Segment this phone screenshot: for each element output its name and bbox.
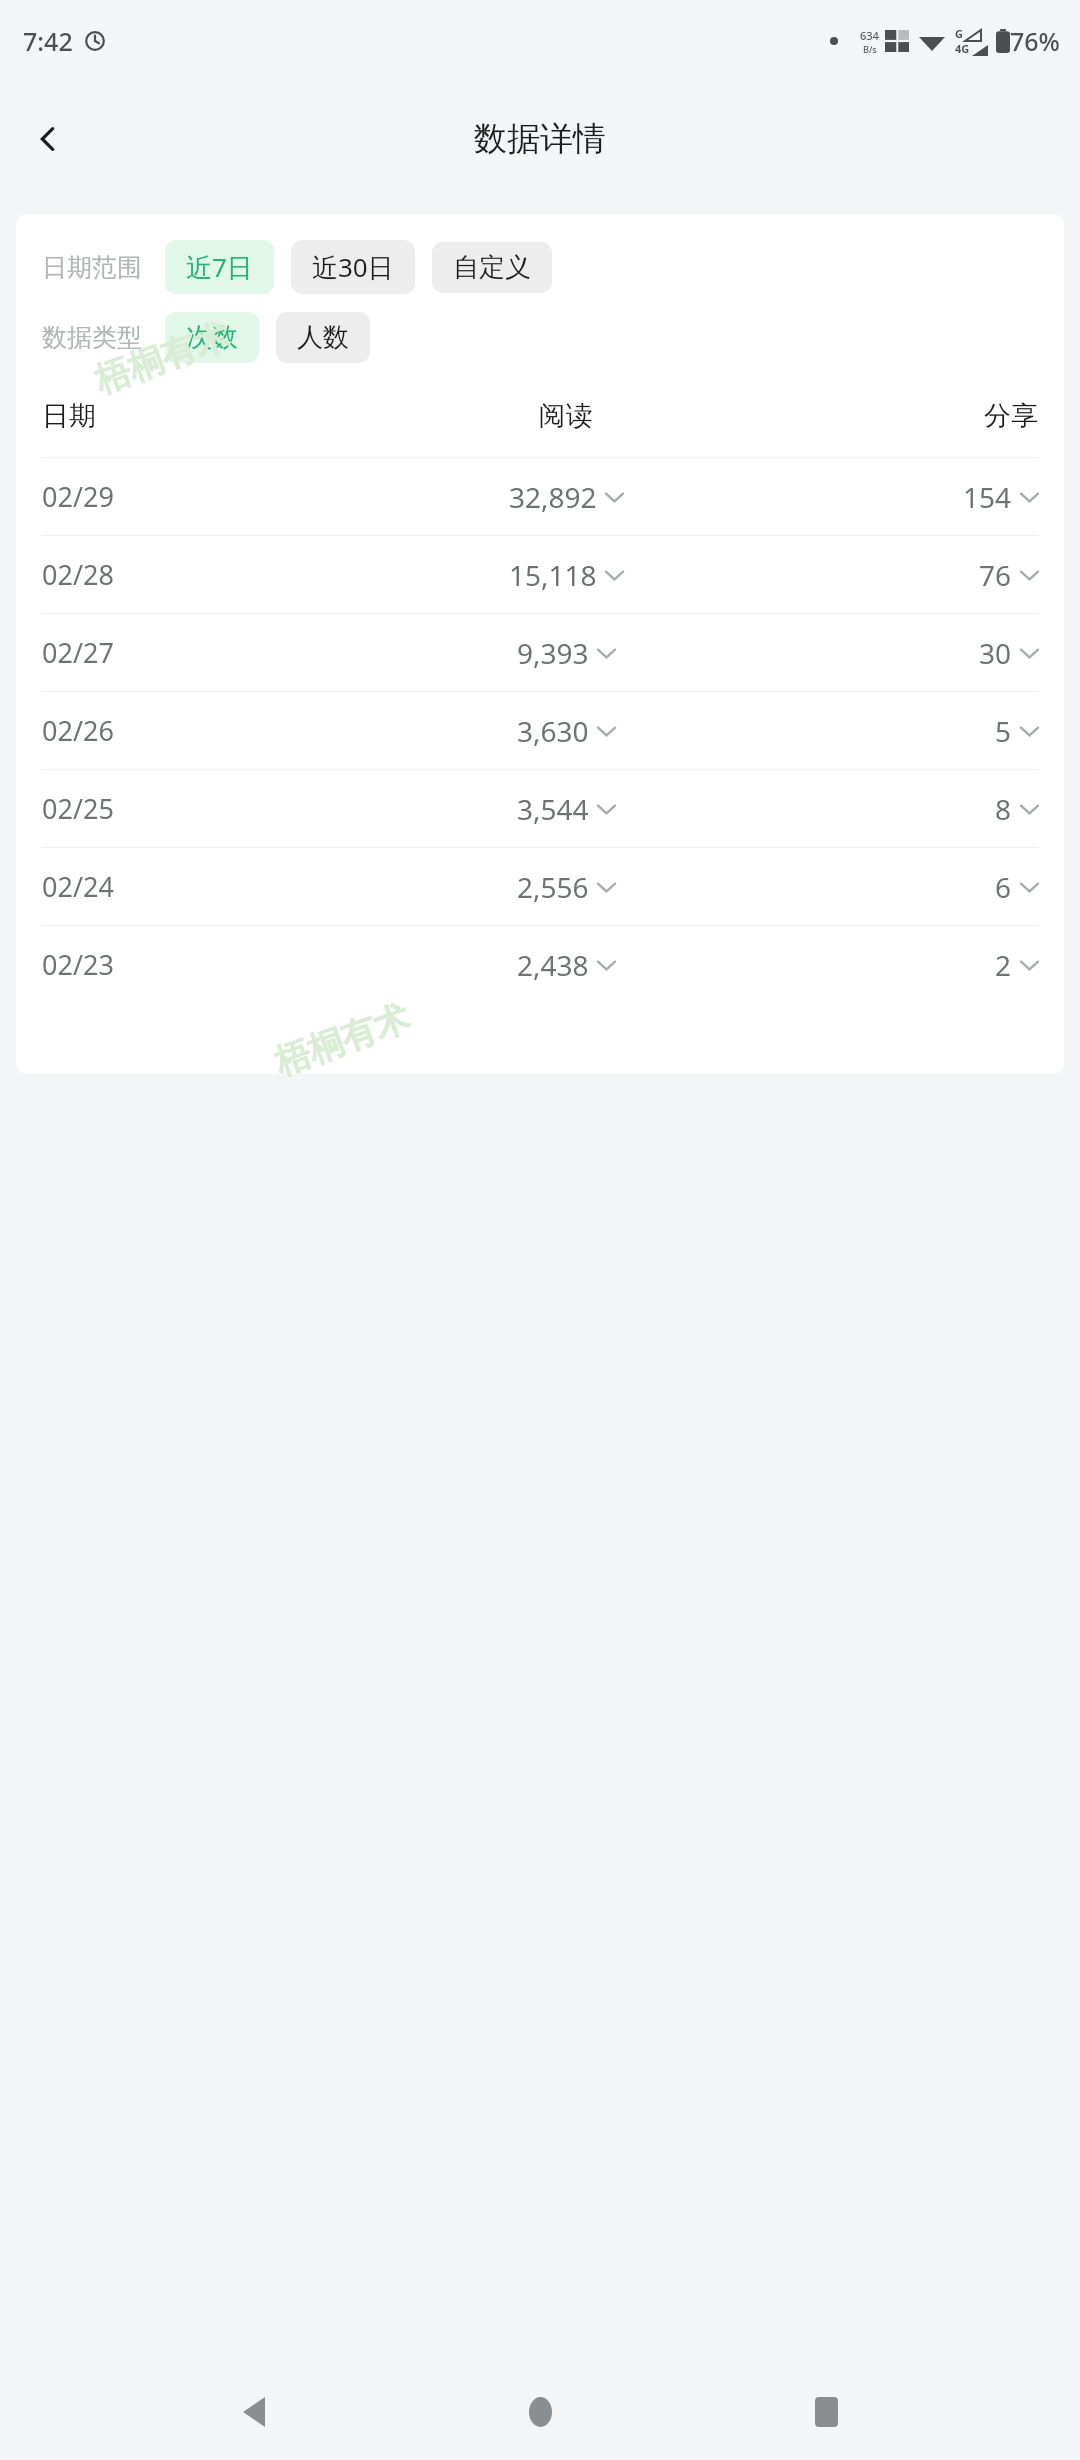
button[interactable]: Home [508, 2380, 572, 2444]
staticText: G [955, 26, 963, 41]
staticText: 02/28 [42, 556, 380, 593]
button[interactable]: 02/23 [16, 926, 1064, 1003]
button[interactable]: Back [222, 2380, 286, 2444]
staticText: 02/29 [42, 478, 380, 515]
staticText: 日期范围 [42, 252, 142, 283]
staticText: 3,630 [517, 712, 589, 750]
button[interactable]: 近7日 [165, 240, 274, 294]
staticText: 3,544 [517, 790, 589, 828]
staticText: 30 [979, 634, 1012, 672]
staticText: 76% [1010, 24, 1060, 58]
staticText: 自定义 [453, 251, 531, 284]
staticText: 2,556 [517, 868, 589, 906]
staticText: 人数 [297, 321, 349, 354]
staticText: 7:42 [23, 24, 73, 58]
staticText: 15,118 [509, 556, 597, 594]
staticText: 9,393 [517, 634, 589, 672]
button[interactable]: 自定义 [432, 242, 552, 293]
staticText: 2,438 [517, 946, 589, 984]
staticText: 32,892 [509, 478, 597, 516]
staticText: 154 [963, 478, 1012, 516]
staticText: 02/24 [42, 868, 380, 905]
button[interactable]: 近30日 [291, 240, 415, 294]
staticText: 次数 [186, 321, 238, 354]
staticText: 8 [995, 790, 1012, 828]
staticText: 数据类型 [42, 322, 142, 353]
staticText: 近30日 [312, 249, 394, 285]
staticText: 梧桐有术 [89, 313, 235, 403]
button[interactable]: 02/29 [16, 458, 1064, 535]
staticText: 02/23 [42, 946, 380, 983]
staticText: 2 [995, 946, 1012, 984]
button[interactable]: 次数 [165, 312, 259, 363]
staticText: 5 [995, 712, 1012, 750]
staticText: 634 [860, 28, 879, 43]
staticText: 阅读 [380, 399, 751, 433]
staticText: 02/27 [42, 634, 380, 671]
button[interactable]: Recents [794, 2380, 858, 2444]
staticText: 6 [995, 868, 1012, 906]
button[interactable]: Back [20, 111, 76, 167]
staticText: 76 [979, 556, 1012, 594]
button[interactable]: 02/24 [16, 848, 1064, 925]
staticText: 数据详情 [474, 118, 606, 160]
button[interactable]: 02/25 [16, 770, 1064, 847]
staticText: 近7日 [186, 249, 253, 285]
button[interactable]: 02/26 [16, 692, 1064, 769]
button[interactable]: 02/27 [16, 614, 1064, 691]
button[interactable]: 02/28 [16, 536, 1064, 613]
staticText: 4G [955, 41, 970, 56]
staticText: 分享 [751, 399, 1038, 433]
button[interactable]: 人数 [276, 312, 370, 363]
staticText: 02/25 [42, 790, 380, 827]
staticText: B/s [863, 43, 877, 55]
staticText: 02/26 [42, 712, 380, 749]
staticText: 梧桐有术 [269, 995, 415, 1085]
staticText: 日期 [42, 399, 380, 433]
